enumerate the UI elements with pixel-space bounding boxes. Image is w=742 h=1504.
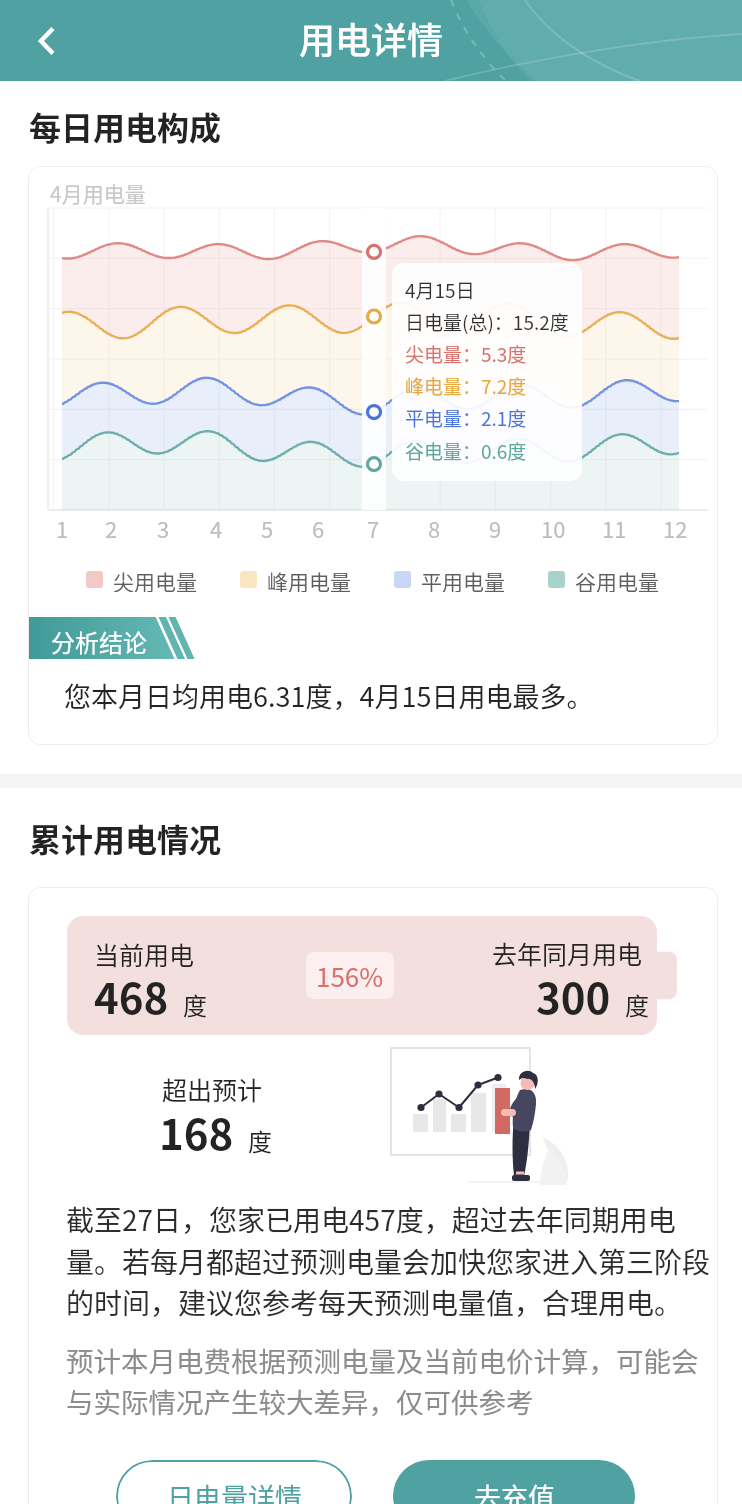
staticText: 8 — [428, 512, 441, 540]
staticText: 日电量(总)：15.2度 — [405, 308, 569, 336]
staticText: 1 — [56, 512, 69, 540]
staticText: 超出预计 — [162, 1071, 263, 1107]
staticText: 度 — [183, 987, 207, 1022]
button[interactable]: 日电量详情 — [116, 1460, 352, 1504]
staticText: 分析结论 — [51, 624, 147, 659]
staticText: 5 — [261, 512, 274, 540]
staticText: 7 — [367, 512, 380, 540]
staticText: 4月15日 — [405, 276, 475, 304]
staticText: 每日用电构成 — [29, 103, 222, 149]
staticText: 日电量详情 — [167, 1477, 302, 1504]
staticText: 去充值 — [474, 1477, 555, 1504]
staticText: 平用电量 — [421, 566, 505, 592]
staticText: 300 — [536, 965, 611, 1026]
staticText: 度 — [248, 1123, 272, 1158]
staticText: 3 — [157, 512, 170, 540]
button[interactable]: Back — [18, 13, 74, 69]
staticText: 峰电量：7.2度 — [405, 372, 527, 400]
staticText: 10 — [541, 512, 566, 540]
staticText: 2 — [105, 512, 118, 540]
staticText: 用电详情 — [299, 12, 444, 64]
staticText: 累计用电情况 — [29, 815, 222, 861]
staticText: 6 — [312, 512, 325, 540]
staticText: 4 — [210, 512, 223, 540]
staticText: 去年同月用电 — [492, 935, 643, 971]
staticText: 468 — [94, 965, 169, 1026]
staticText: 峰用电量 — [267, 566, 351, 592]
staticText: 当前用电 — [94, 936, 195, 972]
staticText: 168 — [159, 1101, 234, 1162]
staticText: 11 — [602, 512, 627, 540]
staticText: 谷用电量 — [575, 566, 659, 592]
staticText: 平电量：2.1度 — [405, 404, 527, 432]
staticText: 截至27日，您家已用电457度，超过去年同期用电量。若每月都超过预测电量会加快您… — [66, 1199, 718, 1322]
staticText: 156% — [316, 957, 384, 995]
staticText: 您本月日均用电6.31度，4月15日用电最多。 — [64, 676, 594, 715]
staticText: 12 — [663, 512, 688, 540]
staticText: 尖用电量 — [113, 566, 197, 592]
staticText: 4月用电量 — [50, 178, 146, 208]
staticText: 预计本月电费根据预测电量及当前电价计算，可能会与实际情况产生较大差异，仅可供参考 — [66, 1340, 706, 1421]
button[interactable]: 去充值 — [393, 1460, 635, 1504]
staticText: 9 — [489, 512, 502, 540]
staticText: 尖电量：5.3度 — [405, 340, 527, 368]
staticText: 度 — [625, 987, 649, 1022]
staticText: 谷电量：0.6度 — [405, 437, 527, 465]
